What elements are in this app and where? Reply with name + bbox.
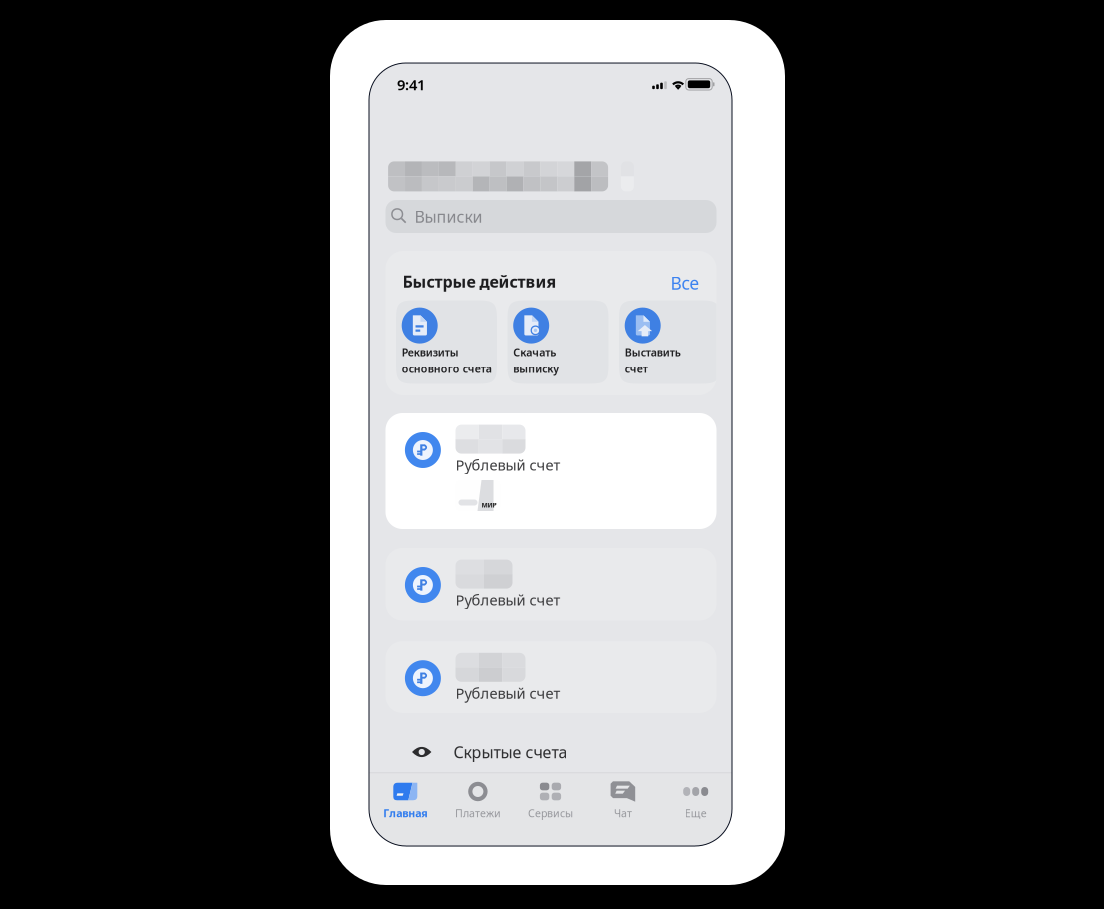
staticText: Рублевый счет — [455, 590, 560, 609]
staticText: 9:41 — [397, 75, 425, 94]
staticText: Выставить — [625, 345, 681, 359]
staticText: Главная — [383, 806, 427, 820]
button[interactable]: Главная — [369, 782, 442, 826]
button[interactable]: Скачать — [507, 300, 608, 383]
button[interactable]: Рублевый счет — [385, 413, 716, 529]
button[interactable]: Платежи — [442, 782, 514, 826]
staticText: Чат — [614, 806, 632, 820]
staticText: Все — [670, 271, 699, 294]
staticText: Еще — [685, 806, 707, 820]
button[interactable]: Все — [659, 272, 699, 294]
button[interactable]: Рублевый счет — [385, 641, 716, 713]
button[interactable]: Сервисы — [514, 782, 587, 826]
staticText: Выписки — [414, 206, 482, 227]
staticText: Быстрые действия — [402, 271, 556, 292]
staticText: счет — [625, 361, 648, 375]
staticText: Платежи — [455, 806, 501, 820]
staticText: Рублевый счет — [455, 683, 560, 703]
button[interactable]: Выставить — [619, 300, 720, 383]
button[interactable]: Реквизиты — [396, 300, 497, 383]
staticText: Реквизиты — [402, 345, 459, 359]
staticText: Скачать — [513, 345, 556, 359]
staticText: основного счета — [402, 361, 492, 375]
button[interactable]: Еще — [659, 782, 732, 826]
button[interactable]: Чат — [587, 782, 659, 826]
staticText: выписку — [513, 361, 559, 375]
staticText: МИР — [481, 500, 496, 509]
staticText: Сервисы — [528, 806, 573, 820]
staticText: Скрытые счета — [453, 741, 567, 763]
button[interactable]: Рублевый счет — [385, 548, 716, 620]
staticText: Рублевый счет — [455, 455, 560, 474]
button[interactable]: Скрытые счета — [412, 737, 732, 767]
